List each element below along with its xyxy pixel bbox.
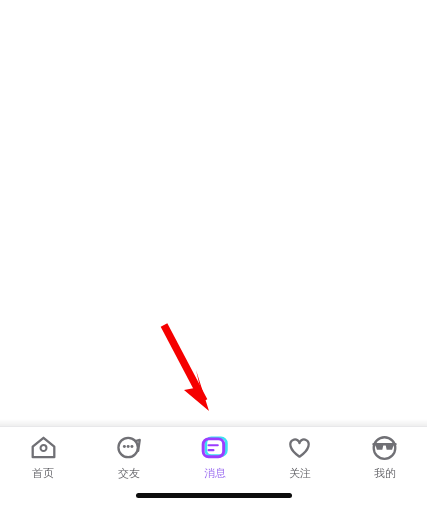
button[interactable]: Profile (342, 427, 427, 487)
button[interactable]: Home (0, 427, 86, 487)
staticText: 我的 (374, 466, 396, 480)
staticText: 交友 (118, 466, 140, 480)
button[interactable]: Following (257, 427, 342, 487)
button[interactable]: Messages (172, 427, 257, 487)
staticText: 消息 (204, 466, 226, 480)
button[interactable]: Friends (86, 427, 172, 487)
staticText: 关注 (289, 466, 311, 480)
staticText: 首页 (32, 466, 54, 480)
